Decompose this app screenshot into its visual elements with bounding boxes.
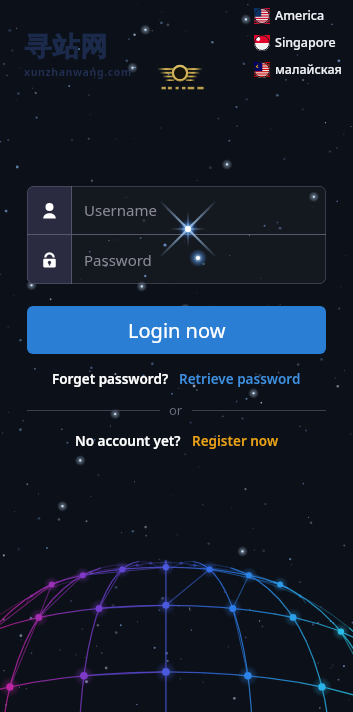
staticText: Password <box>84 250 152 270</box>
button[interactable]: Login now <box>27 306 326 354</box>
button[interactable]: America <box>252 6 327 25</box>
button[interactable]: малайская <box>252 60 344 79</box>
staticText: 寻站网 <box>24 30 108 64</box>
button[interactable]: Password <box>27 235 326 284</box>
button[interactable]: Retrieve password <box>179 370 301 388</box>
staticText: Singapore <box>275 34 336 51</box>
button[interactable]: Username <box>27 186 326 234</box>
staticText: America <box>275 7 325 24</box>
staticText: or <box>169 401 183 419</box>
staticText: Login now <box>128 317 226 344</box>
staticText: Forget password? <box>52 370 169 388</box>
staticText: Username <box>84 200 157 220</box>
staticText: xunzhanwang.com <box>24 65 132 79</box>
button[interactable]: Singapore <box>252 33 338 52</box>
button[interactable]: Register now <box>192 432 279 450</box>
staticText: малайская <box>275 61 342 78</box>
staticText: Retrieve password <box>179 370 301 388</box>
staticText: Register now <box>192 432 279 450</box>
staticText: No account yet? <box>75 432 181 450</box>
